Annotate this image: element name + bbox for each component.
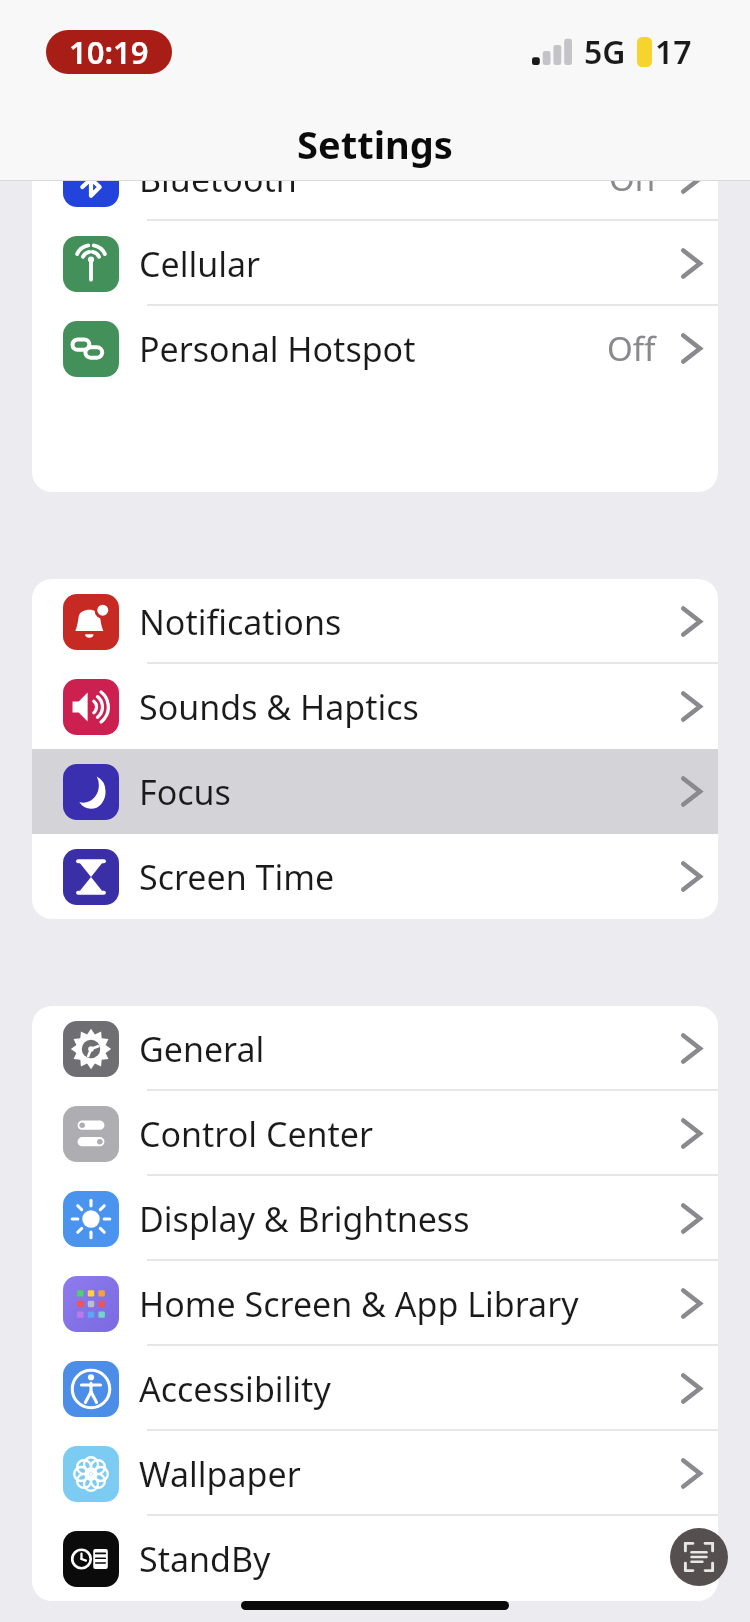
staticText: Control Center [139,1111,674,1157]
staticText: Wallpaper [139,1451,674,1497]
staticText: Home Screen & App Library [139,1281,674,1327]
button[interactable]: 10:19 [46,30,172,74]
button[interactable]: Bluetooth [32,136,718,221]
staticText: 17 [655,30,692,74]
button[interactable]: Accessibility [32,1346,718,1431]
button[interactable]: Sounds & Haptics [32,664,718,749]
staticText: On [609,156,656,201]
staticText: Focus [139,769,674,815]
button[interactable]: Wallpaper [32,1431,718,1516]
staticText: Sounds & Haptics [139,684,674,730]
staticText: StandBy [139,1536,674,1582]
staticText: Personal Hotspot [139,326,607,372]
staticText: Off [607,326,656,371]
staticText: Accessibility [139,1366,674,1412]
button[interactable]: Scan document [670,1528,728,1586]
staticText: General [139,1026,674,1072]
button[interactable]: Home Screen & App Library [32,1261,718,1346]
button[interactable]: Control Center [32,1091,718,1176]
button[interactable]: Cellular [32,221,718,306]
button[interactable]: Personal Hotspot [32,306,718,391]
staticText: Cellular [139,241,674,287]
button[interactable]: General [32,1006,718,1091]
staticText: Screen Time [139,854,674,900]
button[interactable]: Notifications [32,579,718,664]
staticText: 5G [584,30,626,74]
button[interactable]: Wi-Fi [32,96,718,136]
staticText: Notifications [139,599,674,645]
staticText: Bluetooth [139,156,609,202]
staticText: Settings [0,118,750,170]
staticText: 10:19 [69,31,149,73]
button[interactable]: Display & Brightness [32,1176,718,1261]
button[interactable]: Screen Time [32,834,718,919]
button[interactable]: Focus [32,749,718,834]
staticText: Display & Brightness [139,1196,674,1242]
button[interactable]: StandBy [32,1516,718,1601]
